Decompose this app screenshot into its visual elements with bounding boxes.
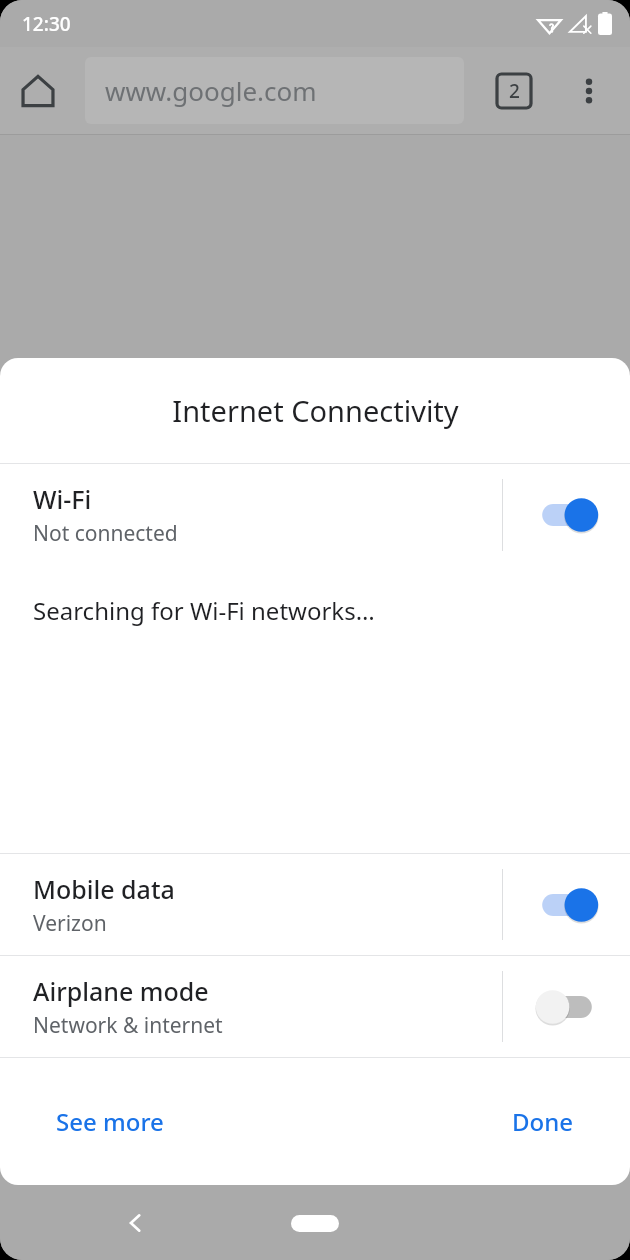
staticText: Mobile data [33, 872, 175, 906]
button[interactable]: See more [36, 1093, 184, 1150]
staticText: Done [512, 1105, 574, 1138]
staticText: Airplane mode [33, 974, 209, 1008]
staticText: Wi-Fi [33, 482, 92, 516]
button[interactable]: Home [10, 63, 66, 119]
button[interactable]: Back [105, 1193, 165, 1253]
staticText: See more [56, 1105, 164, 1138]
button[interactable]: Mobile data [0, 854, 630, 955]
button[interactable]: Airplane mode toggle [503, 956, 630, 1057]
button[interactable]: Mobile data toggle [503, 854, 630, 955]
button[interactable]: Done [492, 1093, 594, 1150]
button[interactable]: Wi-Fi [0, 464, 630, 566]
staticText: www.google.com [105, 73, 317, 108]
staticText: Network & internet [33, 1011, 223, 1040]
button[interactable]: More options [562, 64, 616, 118]
staticText: Internet Connectivity [172, 391, 459, 430]
staticText: 2 [509, 78, 520, 104]
button[interactable]: Tabs, 2 open [487, 64, 541, 118]
staticText: Verizon [33, 909, 107, 938]
button[interactable]: www.google.com [85, 57, 464, 124]
staticText: Not connected [33, 519, 178, 548]
button[interactable]: Airplane mode [0, 956, 630, 1057]
staticText: Searching for Wi-Fi networks… [33, 594, 375, 627]
button[interactable]: Wi-Fi toggle [503, 464, 630, 566]
button[interactable]: Home [270, 1201, 360, 1245]
staticText: 12:30 [22, 11, 71, 37]
